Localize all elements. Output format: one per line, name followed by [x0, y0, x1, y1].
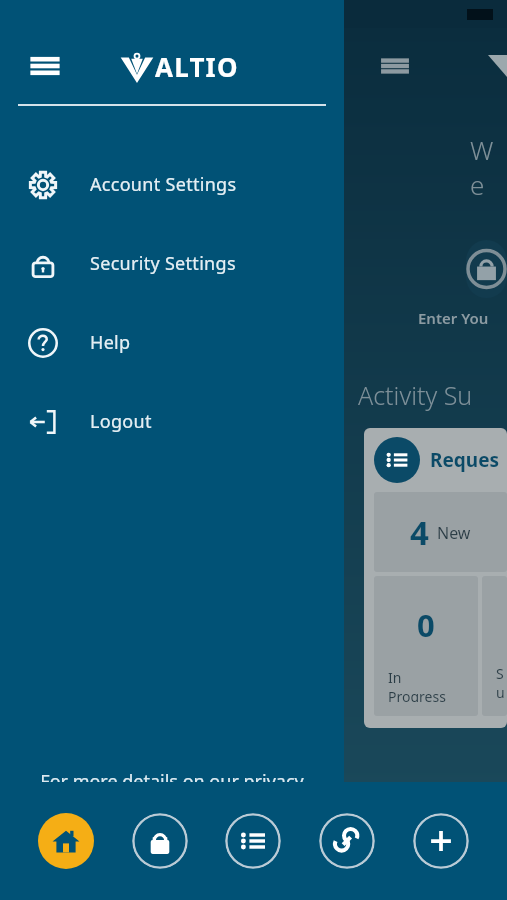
staticText: Logout: [90, 409, 152, 434]
staticText: Enter You: [418, 308, 489, 328]
staticText: For more details on our privacy policies…: [40, 769, 304, 819]
button[interactable]: Menu: [378, 49, 412, 83]
button[interactable]: Security: [132, 813, 188, 869]
staticText: 0: [417, 604, 435, 646]
staticText: Reques: [430, 447, 500, 473]
button[interactable]: Reques: [364, 428, 507, 728]
button[interactable]: Logout: [0, 382, 344, 461]
staticText: Activity Su: [358, 378, 473, 412]
staticText: www.valtio.io/privacy-policy: [45, 839, 300, 864]
button[interactable]: Requests: [225, 813, 281, 869]
button[interactable]: www.valtio.io/privacy-policy: [45, 839, 300, 864]
staticText: In: [388, 668, 402, 687]
staticText: New: [437, 522, 471, 544]
staticText: Account Settings: [90, 172, 237, 197]
button[interactable]: Home: [38, 813, 94, 869]
staticText: Security Settings: [90, 251, 236, 276]
staticText: Progress: [388, 687, 446, 702]
staticText: We: [470, 132, 507, 202]
button[interactable]: Close menu: [28, 49, 62, 83]
button[interactable]: Account Settings: [0, 145, 344, 224]
staticText: ALTIO: [155, 49, 239, 84]
button[interactable]: Help: [0, 303, 344, 382]
button[interactable]: Enter PIN: [466, 240, 507, 298]
button[interactable]: Links: [319, 813, 375, 869]
staticText: Help: [90, 330, 131, 355]
button[interactable]: Add: [413, 813, 469, 869]
staticText: 4: [410, 510, 429, 555]
button[interactable]: Security Settings: [0, 224, 344, 303]
